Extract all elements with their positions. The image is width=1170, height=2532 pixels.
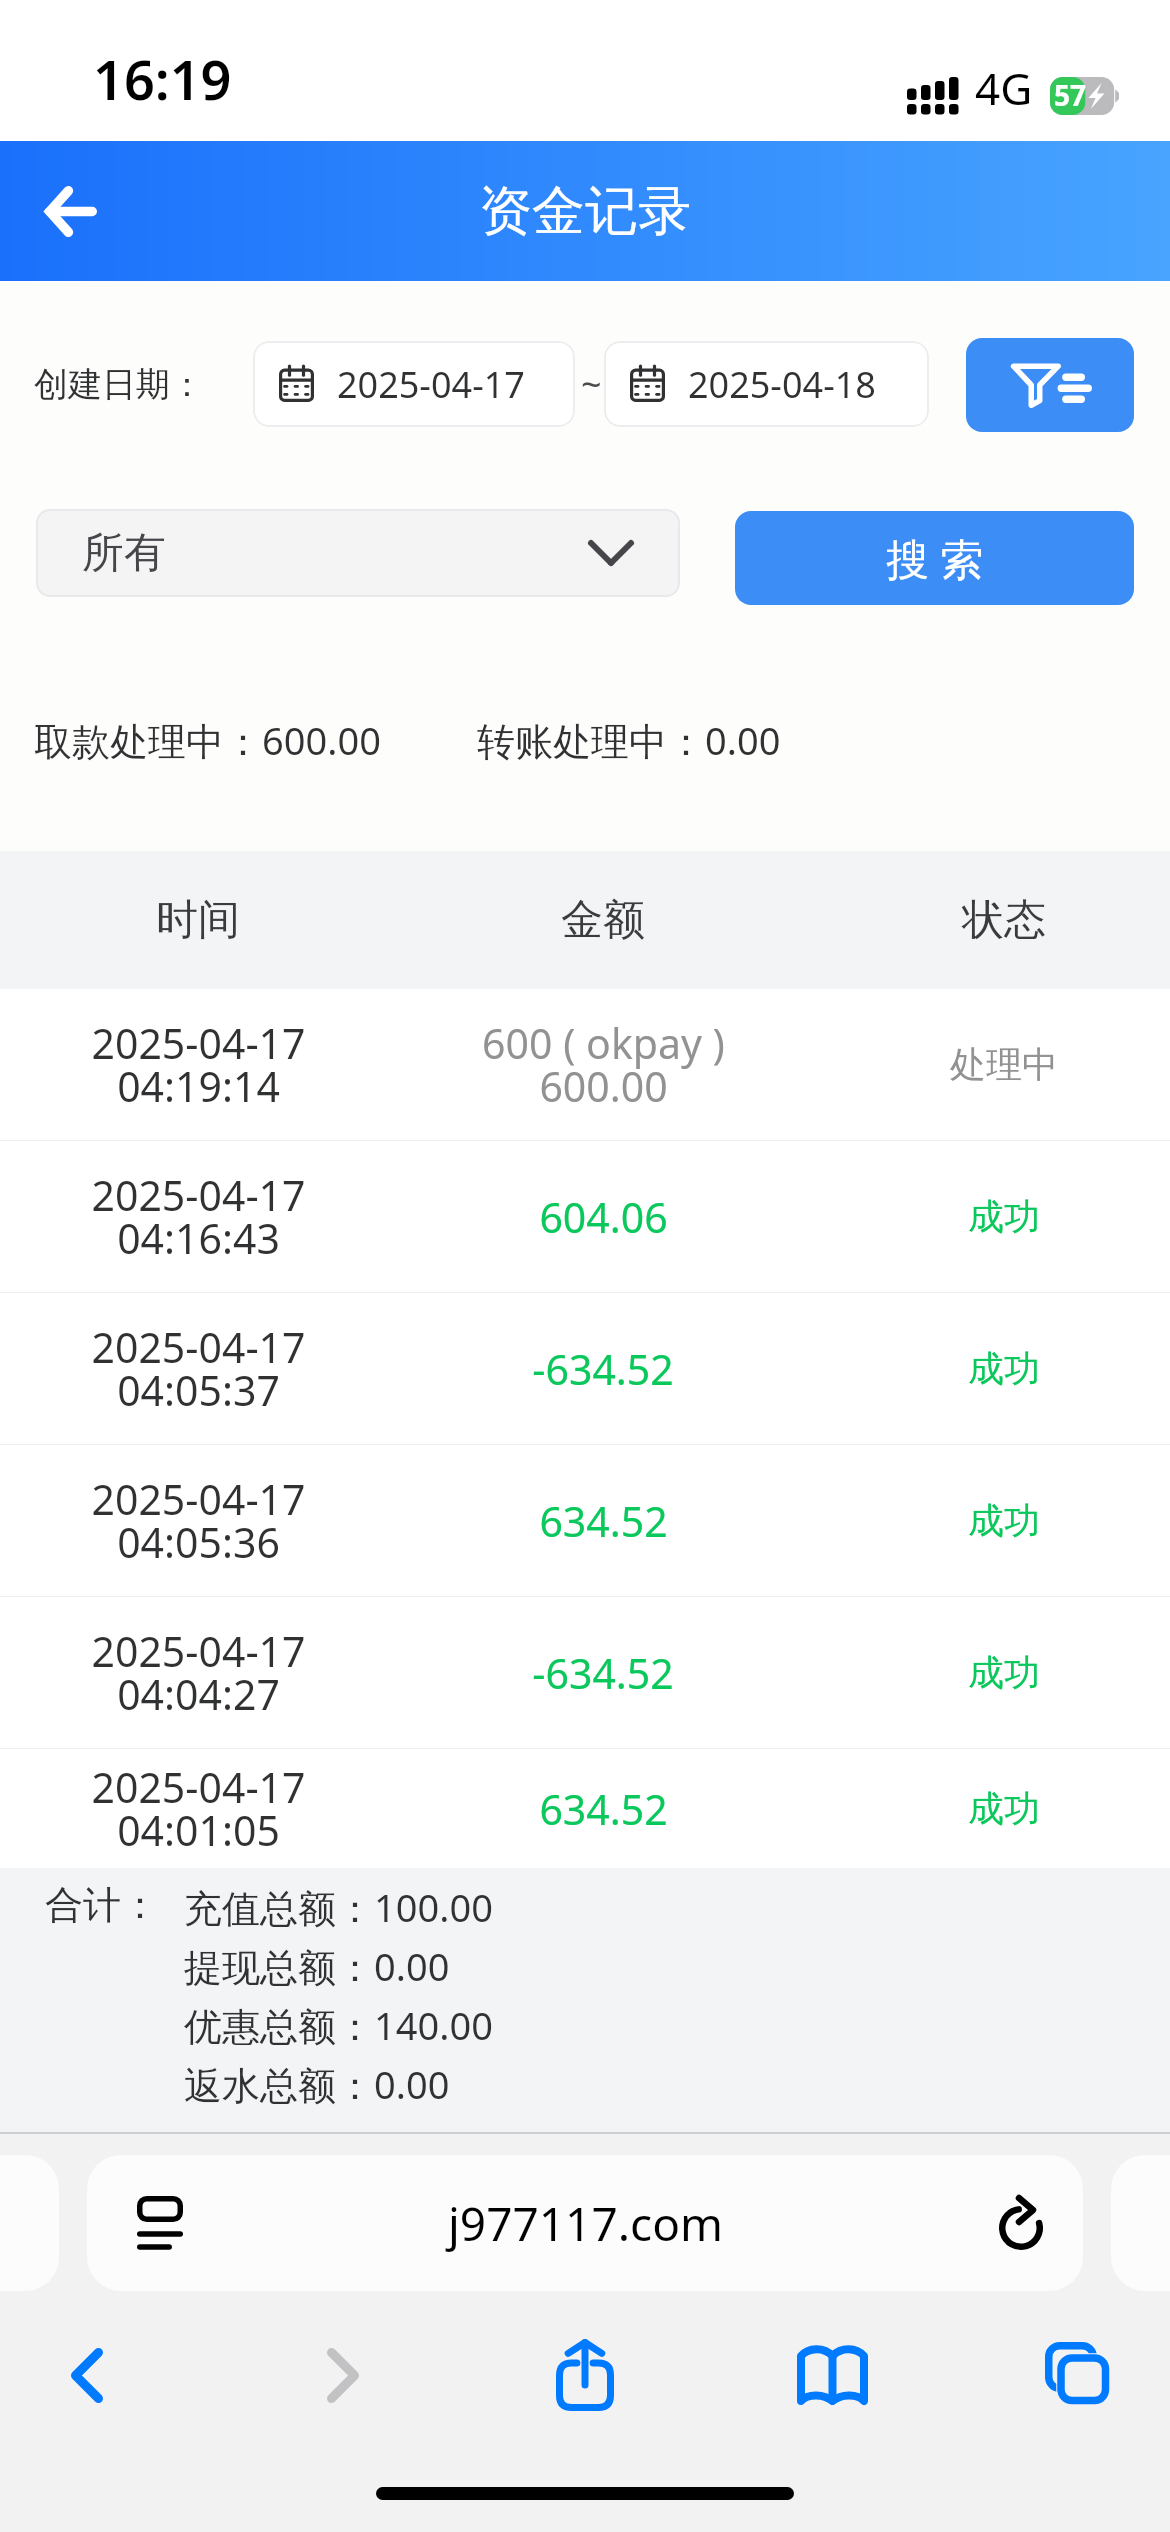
button[interactable]: 2025-04-17 04:04:27 [0,1597,1170,1748]
button[interactable]: 2025-04-17 04:16:43 [0,1141,1170,1292]
staticText: 2025-04-17 04:04:27 [91,1623,306,1722]
staticText: 搜 索 [886,529,984,588]
button[interactable]: 2025-04-17 [253,341,575,427]
staticText: 状态 [962,894,1046,947]
staticText: 2025-04-17 [337,360,525,409]
other: Page settings [137,2196,183,2250]
staticText: 资金记录 [479,178,691,245]
button[interactable]: 2025-04-17 04:01:05 [0,1749,1170,1868]
button[interactable]: 所有 [36,509,680,597]
staticText: 2025-04-17 04:16:43 [91,1167,306,1266]
staticText: 时间 [156,894,240,947]
button[interactable]: 2025-04-18 [604,341,929,427]
button[interactable]: Back [21,161,121,261]
button[interactable]: Tabs [962,2315,1170,2435]
staticText: 处理中 [950,1042,1058,1087]
staticText: 600 ( okpay ) 600.00 [482,1015,725,1114]
button[interactable]: Share [468,2315,702,2435]
staticText: 57 [1054,76,1087,114]
button[interactable]: 搜 索 [735,511,1134,605]
staticText: ~ [581,360,602,409]
staticText: 所有 [82,527,166,580]
button[interactable]: Back [0,2315,204,2435]
staticText: 2025-04-17 04:05:37 [91,1319,306,1418]
staticText: 充值总额：100.00 提现总额：0.00 优惠总额：140.00 返水总额：0… [184,1881,493,2110]
staticText: 634.52 [539,1493,668,1549]
staticText: 合计： [45,1881,159,1929]
staticText: 2025-04-17 04:19:14 [91,1015,306,1114]
staticText: 2025-04-17 04:01:05 [91,1759,306,1858]
staticText: 取款处理中：600.00 [34,714,381,766]
staticText: -634.52 [532,1341,674,1397]
staticText: -634.52 [532,1645,674,1701]
staticText: 4G [975,58,1033,118]
staticText: 成功 [968,1786,1040,1831]
staticText: 2025-04-17 04:05:36 [91,1471,306,1570]
staticText: 成功 [968,1194,1040,1239]
button[interactable]: 2025-04-17 04:05:37 [0,1293,1170,1444]
staticText: 2025-04-18 [688,360,876,409]
button[interactable]: Page settings [87,2155,1083,2291]
staticText: 16:19 [93,42,232,116]
button[interactable]: Bookmarks [715,2315,949,2435]
staticText: 604.06 [539,1189,668,1245]
staticText: 转账处理中：0.00 [477,714,781,766]
staticText: 成功 [968,1346,1040,1391]
staticText: 成功 [968,1650,1040,1695]
button[interactable]: Forward [226,2315,460,2435]
other: Reload [999,2196,1043,2250]
staticText: 634.52 [539,1781,668,1837]
button[interactable]: Filter [966,338,1134,432]
button[interactable]: 2025-04-17 04:19:14 [0,989,1170,1140]
staticText: 成功 [968,1498,1040,1543]
staticText: 金额 [561,894,645,947]
button[interactable]: 2025-04-17 04:05:36 [0,1445,1170,1596]
staticText: 创建日期： [34,363,204,406]
staticText: j977117.com [448,2192,723,2255]
